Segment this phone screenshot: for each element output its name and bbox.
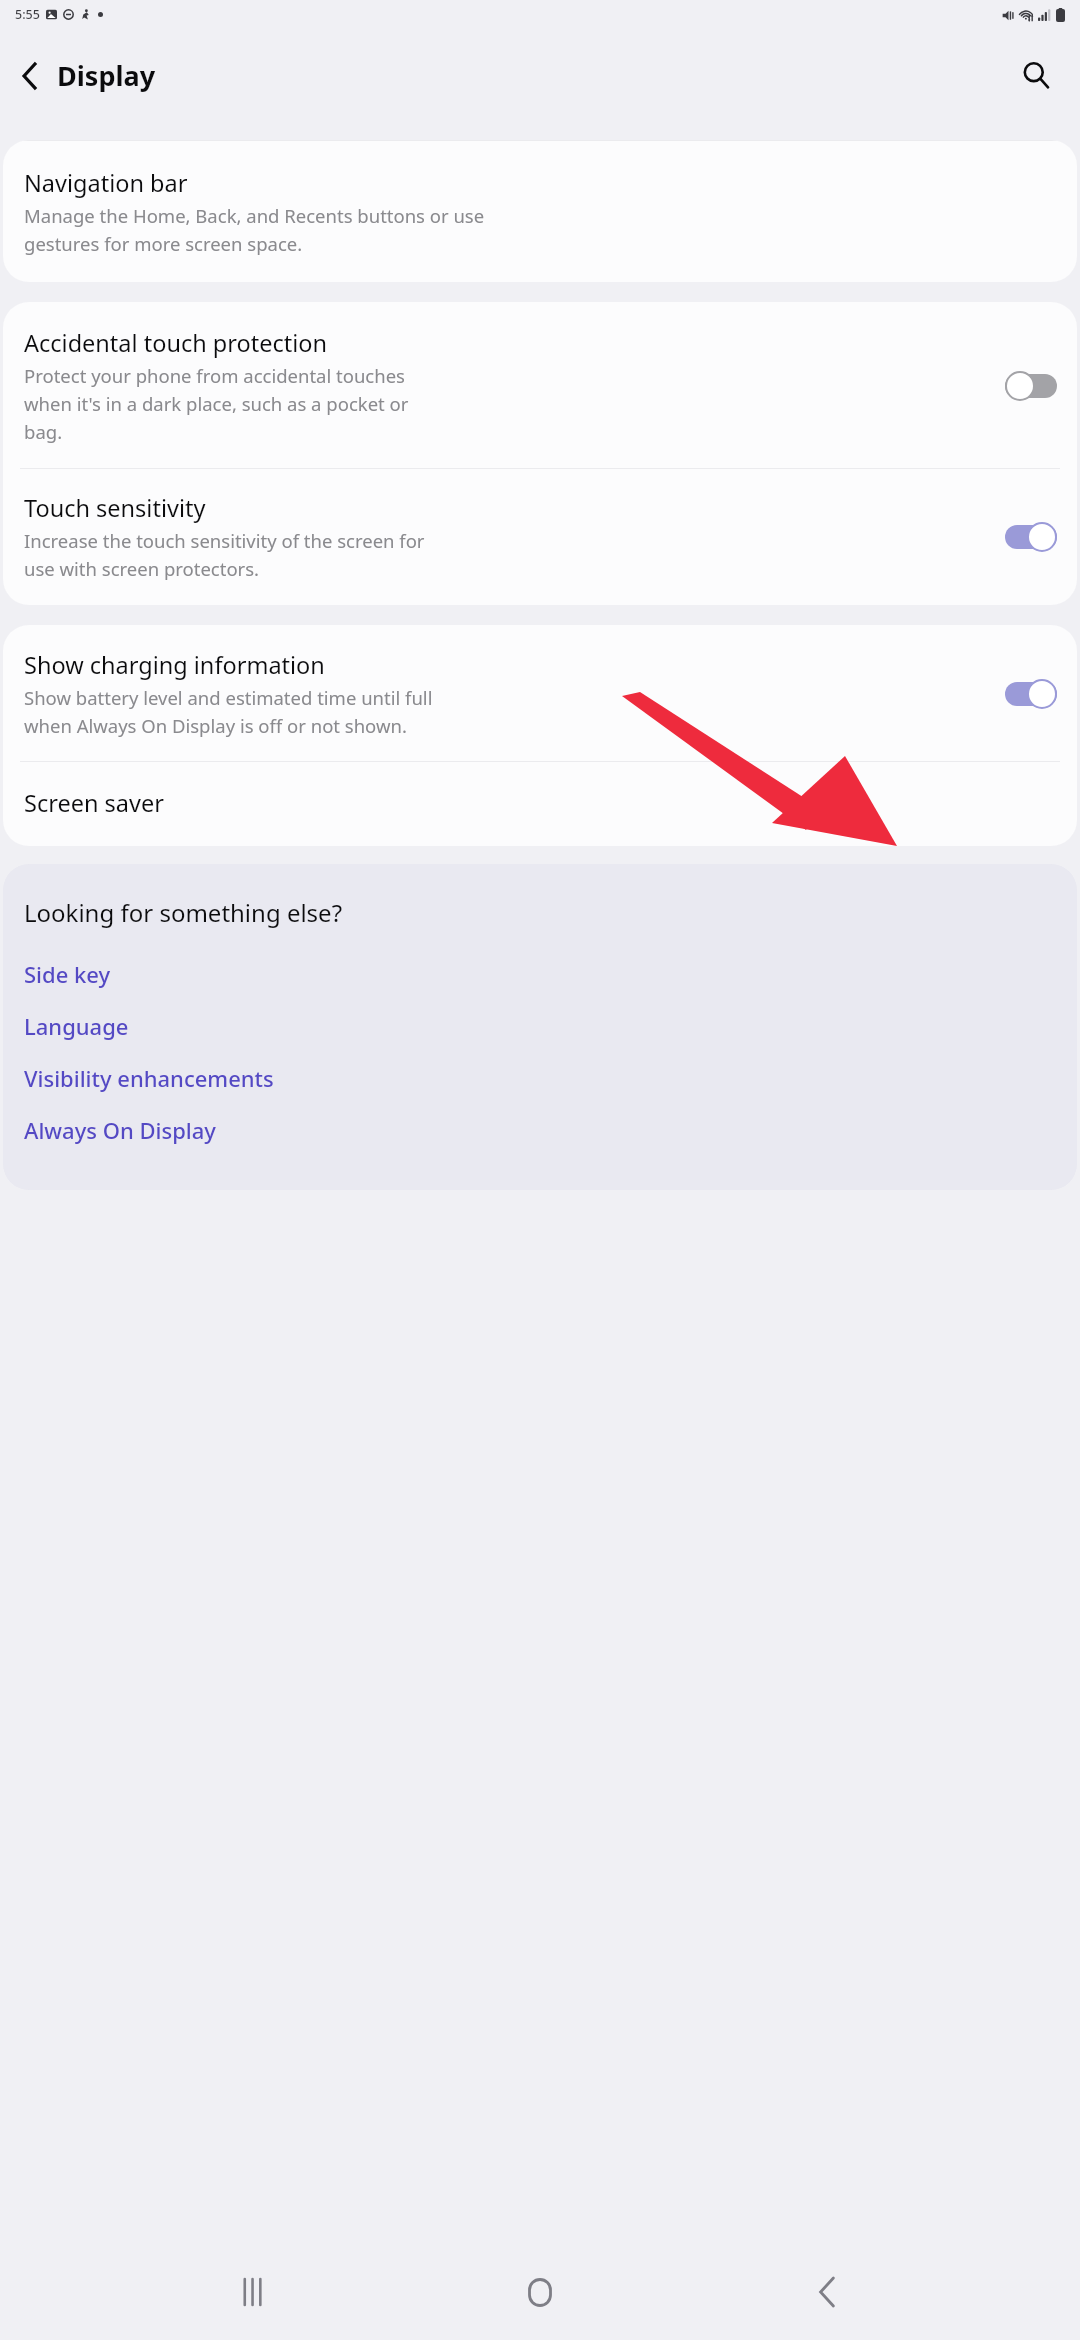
- staticText: Navigation bar: [24, 167, 188, 199]
- button[interactable]: Search: [1010, 49, 1062, 101]
- button[interactable]: On: [1005, 679, 1057, 709]
- button[interactable]: Navigation bar: [3, 140, 1077, 282]
- staticText: Increase the touch sensitivity of the sc…: [24, 528, 425, 581]
- button[interactable]: Language: [24, 1000, 1053, 1052]
- button[interactable]: Off: [1005, 371, 1057, 401]
- button[interactable]: Show charging information: [3, 625, 1077, 761]
- staticText: Looking for something else?: [24, 896, 343, 929]
- button[interactable]: On: [1005, 522, 1057, 552]
- staticText: Display: [57, 57, 156, 94]
- staticText: Show charging information: [24, 649, 325, 681]
- button[interactable]: Back: [0, 51, 164, 100]
- button[interactable]: Screen saver: [3, 762, 1077, 846]
- staticText: Protect your phone from accidental touch…: [24, 363, 409, 444]
- staticText: Language: [24, 1011, 129, 1041]
- staticText: Visibility enhancements: [24, 1063, 274, 1093]
- other: Back: [12, 59, 46, 93]
- button[interactable]: Recents: [221, 2259, 287, 2325]
- staticText: Touch sensitivity: [24, 492, 206, 524]
- button[interactable]: Touch sensitivity: [3, 469, 1077, 605]
- staticText: Screen saver: [24, 787, 164, 819]
- staticText: Always On Display: [24, 1115, 216, 1145]
- staticText: Accidental touch protection: [24, 327, 328, 359]
- staticText: Side key: [24, 959, 111, 989]
- staticText: Manage the Home, Back, and Recents butto…: [24, 203, 485, 256]
- staticText: 5:55: [15, 6, 40, 23]
- button[interactable]: Always On Display: [24, 1104, 1053, 1156]
- button[interactable]: Back: [794, 2259, 860, 2325]
- button[interactable]: Visibility enhancements: [24, 1052, 1053, 1104]
- staticText: Show battery level and estimated time un…: [24, 685, 433, 738]
- button[interactable]: Home: [507, 2259, 573, 2325]
- button[interactable]: Side key: [24, 948, 1053, 1000]
- button[interactable]: Accidental touch protection: [3, 302, 1077, 468]
